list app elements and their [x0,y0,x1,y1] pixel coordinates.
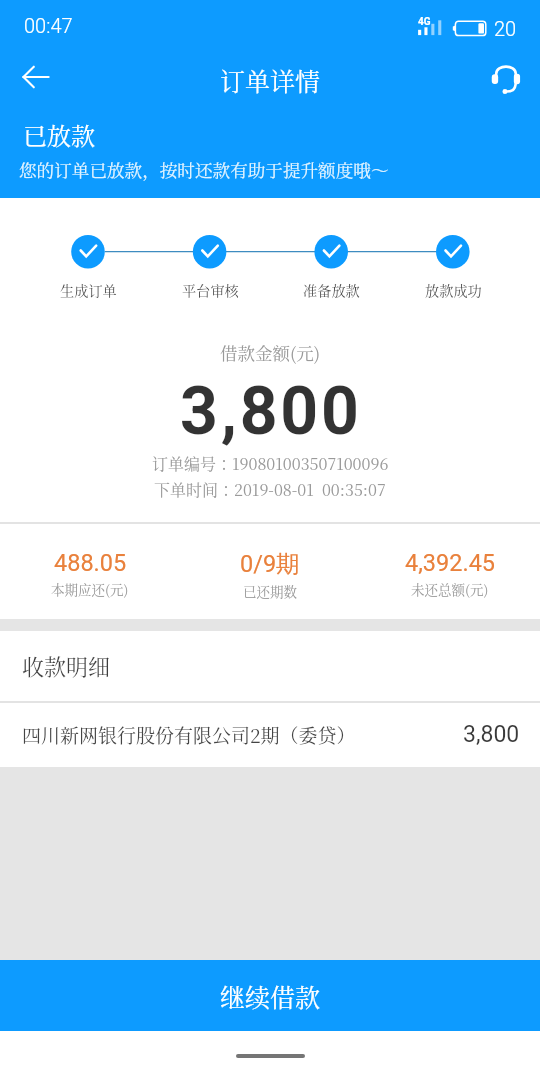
staticText: 下单时间：2019-08-01 00:35:07 [154,478,386,501]
button[interactable]: Customer service [479,50,533,104]
staticText: 4,392.45 [405,549,496,577]
staticText: 4G [418,16,431,28]
staticText: 3,800 [180,373,362,450]
staticText: 四川新网银行股份有限公司2期（委贷） [22,721,356,748]
staticText: 订单详情 [220,62,321,98]
staticText: 您的订单已放款，按时还款有助于提升额度哦～ [19,157,389,182]
staticText: 00:47 [24,14,73,37]
staticText: 准备放款 [303,280,360,300]
staticText: 放款成功 [425,280,482,300]
staticText: 已还期数 [243,581,297,600]
staticText: 平台审核 [182,280,239,300]
staticText: 继续借款 [220,978,321,1014]
staticText: 已放款 [23,117,95,151]
button[interactable]: 488.05 [0,520,180,619]
button[interactable]: 继续借款 [0,960,540,1031]
staticText: 本期应还(元) [51,579,129,598]
button[interactable]: Back [8,50,62,104]
staticText: 借款金额(元) [220,340,321,365]
staticText: 488.05 [54,549,127,577]
staticText: 生成订单 [60,280,117,300]
staticText: 0/9期 [240,549,300,579]
staticText: 未还总额(元) [411,579,489,598]
staticText: 20 [494,17,517,39]
staticText: 订单编号：190801003507100096 [152,452,389,475]
button[interactable]: 四川新网银行股份有限公司2期（委贷） [0,701,540,767]
staticText: 收款明细 [22,650,111,682]
button[interactable]: 0/9期 [180,520,360,619]
button[interactable]: 4,392.45 [360,520,540,619]
staticText: 3,800 [463,721,520,748]
